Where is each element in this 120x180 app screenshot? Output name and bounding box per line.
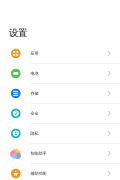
- button[interactable]: 安全: [0, 104, 120, 124]
- staticText: 存储: [30, 91, 38, 96]
- staticText: 电池: [30, 71, 38, 76]
- staticText: 应用: [30, 51, 38, 56]
- button[interactable]: 存储: [0, 84, 120, 104]
- staticText: 安全: [30, 111, 38, 116]
- staticText: 隐私: [30, 131, 38, 136]
- staticText: 辅助功能: [30, 171, 46, 176]
- button[interactable]: 隐私: [0, 124, 120, 144]
- staticText: 设置: [9, 27, 27, 39]
- button[interactable]: 智能助手: [0, 144, 120, 164]
- button[interactable]: 辅助功能: [0, 164, 120, 180]
- staticText: 智能助手: [30, 151, 46, 156]
- button[interactable]: 电池: [0, 64, 120, 84]
- button[interactable]: 应用: [0, 44, 120, 64]
